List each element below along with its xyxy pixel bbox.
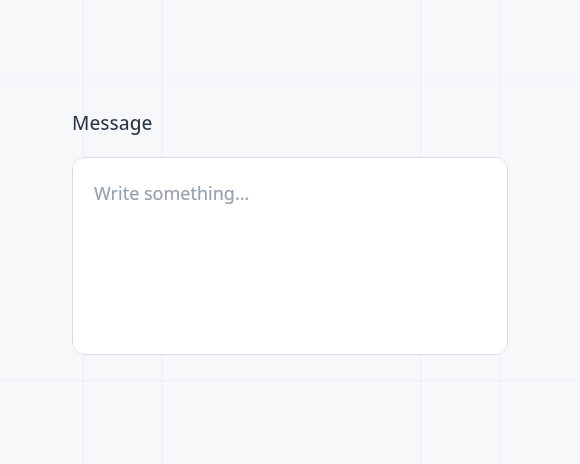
button[interactable]: Write something…	[72, 157, 508, 355]
staticText: Write something…	[94, 181, 250, 206]
staticText: Message	[72, 110, 153, 136]
